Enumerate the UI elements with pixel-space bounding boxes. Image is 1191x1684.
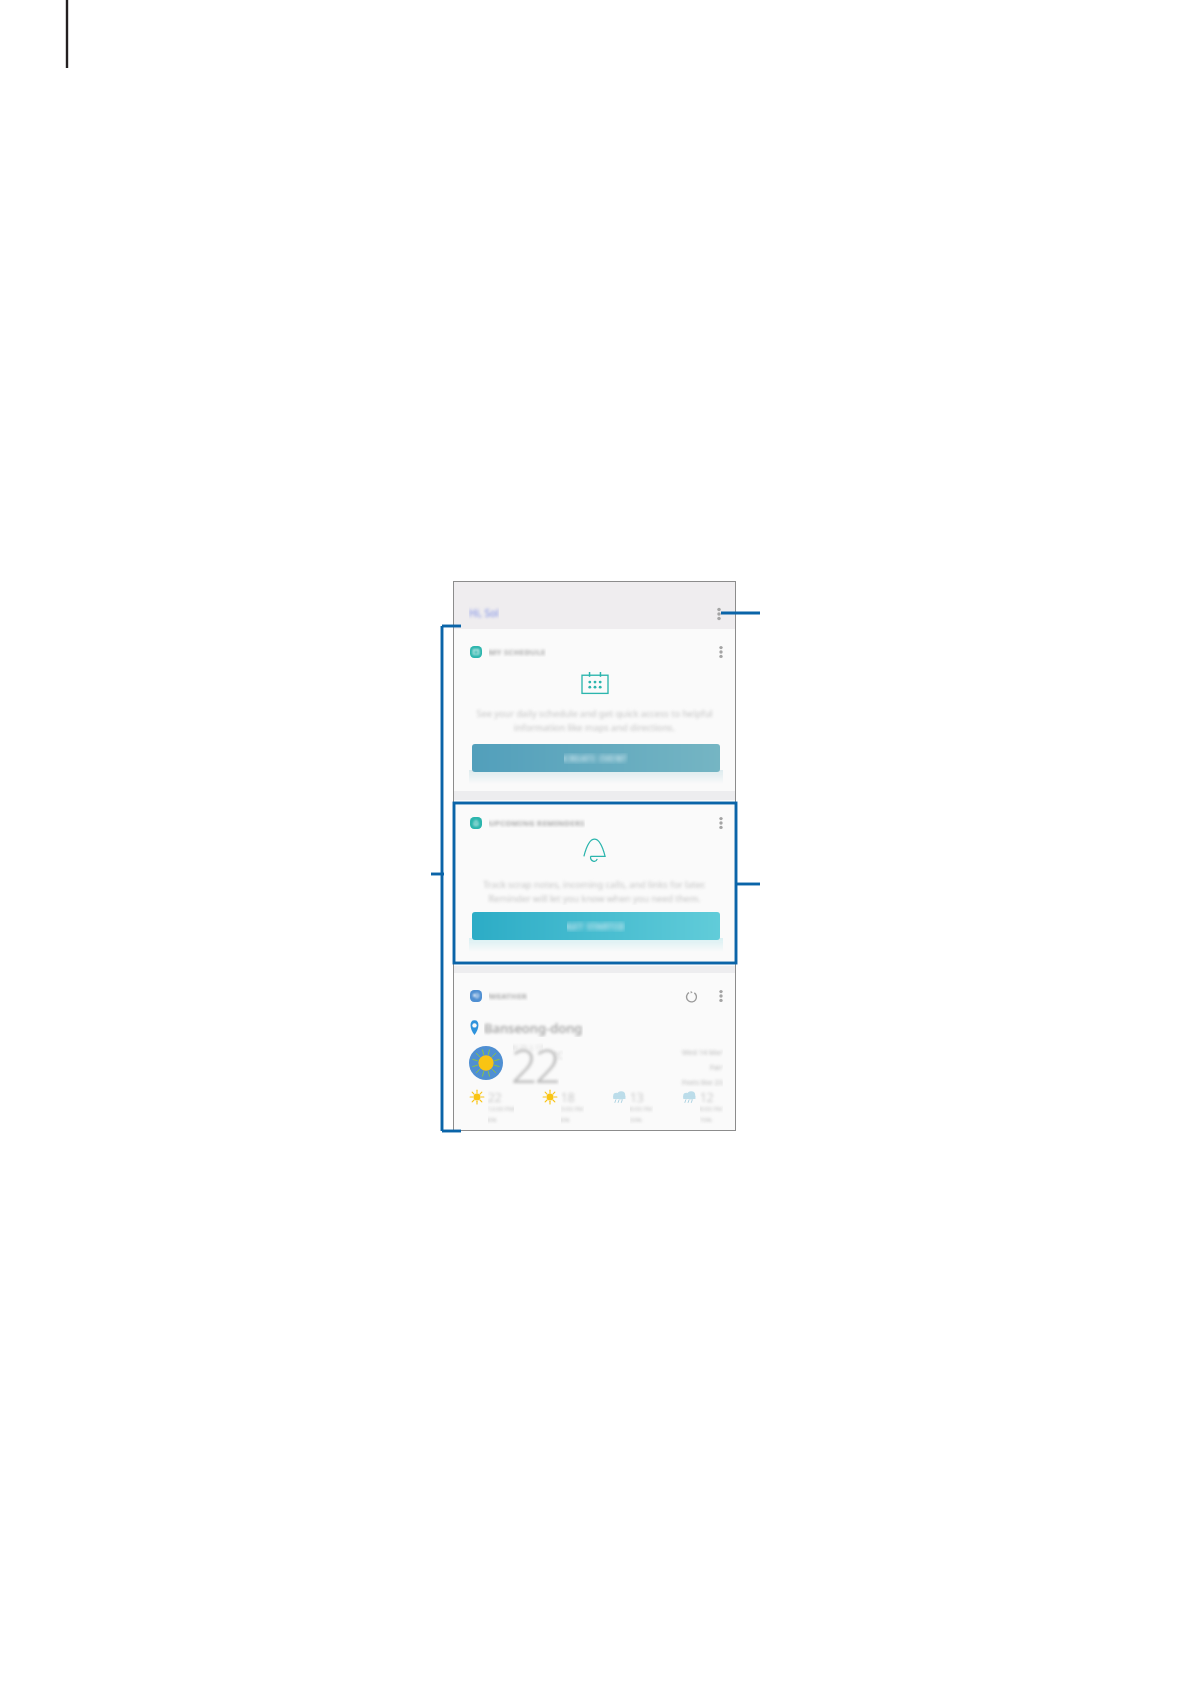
staticText: Track scrap notes, incoming calls, and l… (463, 878, 726, 905)
staticText: CREATE EVENT (564, 753, 628, 764)
button[interactable]: More options (708, 603, 730, 625)
button[interactable]: UPCOMING REMINDERS (453, 800, 736, 966)
staticText: 12 (700, 1089, 714, 1105)
staticText: H 25 L 17 (513, 1043, 543, 1052)
staticText: 18 (561, 1089, 575, 1105)
button[interactable]: WEATHER (453, 973, 736, 1131)
button[interactable]: Refresh (680, 985, 702, 1007)
button[interactable]: WEATHER (470, 990, 528, 1002)
staticText: 3:00 PM (561, 1105, 584, 1113)
staticText: 9:00 PM (700, 1105, 723, 1113)
button[interactable]: More options (710, 641, 732, 663)
staticText: 0% (488, 1116, 497, 1124)
button[interactable]: More options (710, 985, 732, 1007)
staticText: 70% (700, 1116, 712, 1124)
button[interactable]: MY SCHEDULE (453, 629, 736, 791)
staticText: 22 (511, 1034, 559, 1097)
staticText: Feels like 23 (682, 1077, 723, 1087)
staticText: Fair (710, 1062, 723, 1072)
staticText: WEATHER (489, 991, 528, 1001)
staticText: Banseong-dong (484, 1019, 583, 1037)
staticText: See your daily schedule and get quick ac… (463, 707, 726, 734)
staticText: GET STARTED (567, 921, 625, 932)
staticText: Hi, Sol (469, 606, 499, 620)
staticText: MY SCHEDULE (489, 647, 546, 657)
button[interactable]: MY SCHEDULE (470, 646, 546, 658)
button[interactable]: CREATE EVENT (472, 744, 720, 772)
staticText: 30% (630, 1116, 642, 1124)
staticText: 6:00 PM (630, 1105, 653, 1113)
staticText: 12:00 PM (488, 1105, 514, 1113)
staticText: UPCOMING REMINDERS (489, 818, 585, 828)
button[interactable]: UPCOMING REMINDERS (470, 817, 585, 829)
staticText: 22 (488, 1089, 502, 1105)
staticText: 13 (630, 1089, 644, 1105)
staticText: Wed 14 Mar (682, 1047, 723, 1057)
staticText: 0% (561, 1116, 570, 1124)
button[interactable]: GET STARTED (472, 912, 720, 940)
staticText: °C (554, 1050, 563, 1061)
button[interactable]: More options (710, 812, 732, 834)
